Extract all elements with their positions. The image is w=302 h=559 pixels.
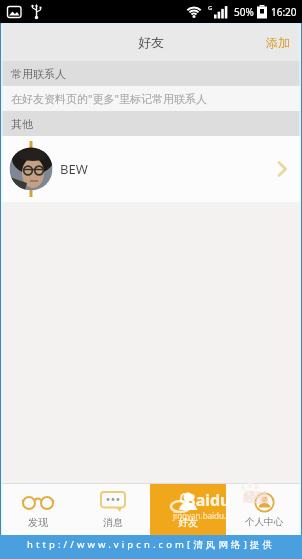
- button[interactable]: 好友: [150, 484, 226, 535]
- staticText: 添加: [266, 35, 290, 50]
- staticText: jingyan.baidu.c: [173, 510, 230, 521]
- staticText: 好友: [178, 516, 198, 529]
- staticText: 好友: [138, 34, 164, 50]
- staticText: 经验: [243, 489, 269, 505]
- button[interactable]: 个人中心: [226, 484, 302, 535]
- button[interactable]: 添加: [254, 27, 302, 58]
- staticText: 50%: [234, 5, 254, 19]
- staticText: Baidu: [185, 489, 231, 511]
- button[interactable]: 发现: [0, 484, 75, 535]
- button[interactable]: 消息: [75, 484, 150, 535]
- staticText: 其他: [11, 117, 33, 131]
- staticText: BEW: [60, 160, 88, 178]
- staticText: 发现: [28, 516, 48, 529]
- button[interactable]: BEW: [0, 136, 302, 202]
- staticText: 消息: [103, 516, 123, 529]
- staticText: 16:20: [271, 5, 297, 19]
- staticText: 个人中心: [245, 516, 283, 528]
- staticText: 在好友资料页的"更多"里标记常用联系人: [11, 91, 207, 106]
- staticText: 常用联系人: [11, 67, 66, 81]
- staticText: http://www.vipcn.com[清风网络]提供: [27, 538, 276, 551]
- staticText: G: [208, 4, 213, 12]
